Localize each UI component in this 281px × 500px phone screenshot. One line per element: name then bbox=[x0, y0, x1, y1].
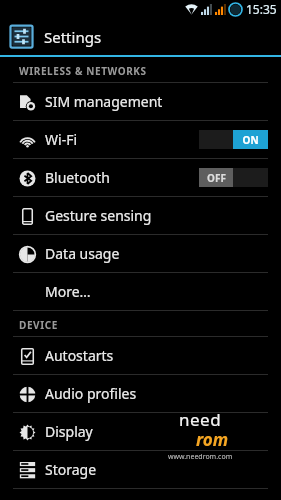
staticText: Data usage bbox=[45, 244, 120, 263]
staticText: Gesture sensing bbox=[45, 206, 152, 225]
button[interactable]: Off bbox=[199, 168, 268, 187]
button[interactable]: Storage bbox=[0, 451, 281, 488]
staticText: DEVICE bbox=[19, 318, 58, 332]
staticText: www.needrom.com bbox=[168, 452, 233, 462]
button[interactable]: Display bbox=[0, 413, 281, 450]
button[interactable]: SIM management bbox=[0, 83, 281, 120]
staticText: Settings bbox=[44, 27, 102, 47]
button[interactable]: Gesture sensing bbox=[0, 197, 281, 234]
staticText: ON bbox=[242, 133, 259, 147]
staticText: WIRELESS & NETWORKS bbox=[19, 64, 147, 78]
staticText: More… bbox=[45, 282, 91, 301]
button[interactable]: Settings bbox=[0, 18, 281, 55]
staticText: Wi-Fi bbox=[45, 130, 78, 149]
staticText: 15:35 bbox=[246, 1, 277, 17]
button[interactable]: Audio profiles bbox=[0, 375, 281, 412]
staticText: need bbox=[179, 408, 222, 431]
button[interactable]: Bluetooth bbox=[0, 159, 281, 196]
button[interactable]: Autostarts bbox=[0, 337, 281, 374]
staticText: SIM management bbox=[45, 92, 163, 111]
staticText: Autostarts bbox=[45, 346, 114, 365]
button[interactable]: Wi-Fi bbox=[0, 121, 281, 158]
staticText: OFF bbox=[207, 171, 226, 185]
button[interactable]: More… bbox=[0, 273, 281, 310]
staticText: Bluetooth bbox=[45, 168, 110, 187]
staticText: Audio profiles bbox=[45, 384, 137, 403]
button[interactable]: On bbox=[199, 130, 268, 149]
staticText: Display bbox=[45, 422, 93, 441]
staticText: Storage bbox=[45, 460, 97, 479]
staticText: rom bbox=[196, 428, 229, 451]
button[interactable]: Data usage bbox=[0, 235, 281, 272]
